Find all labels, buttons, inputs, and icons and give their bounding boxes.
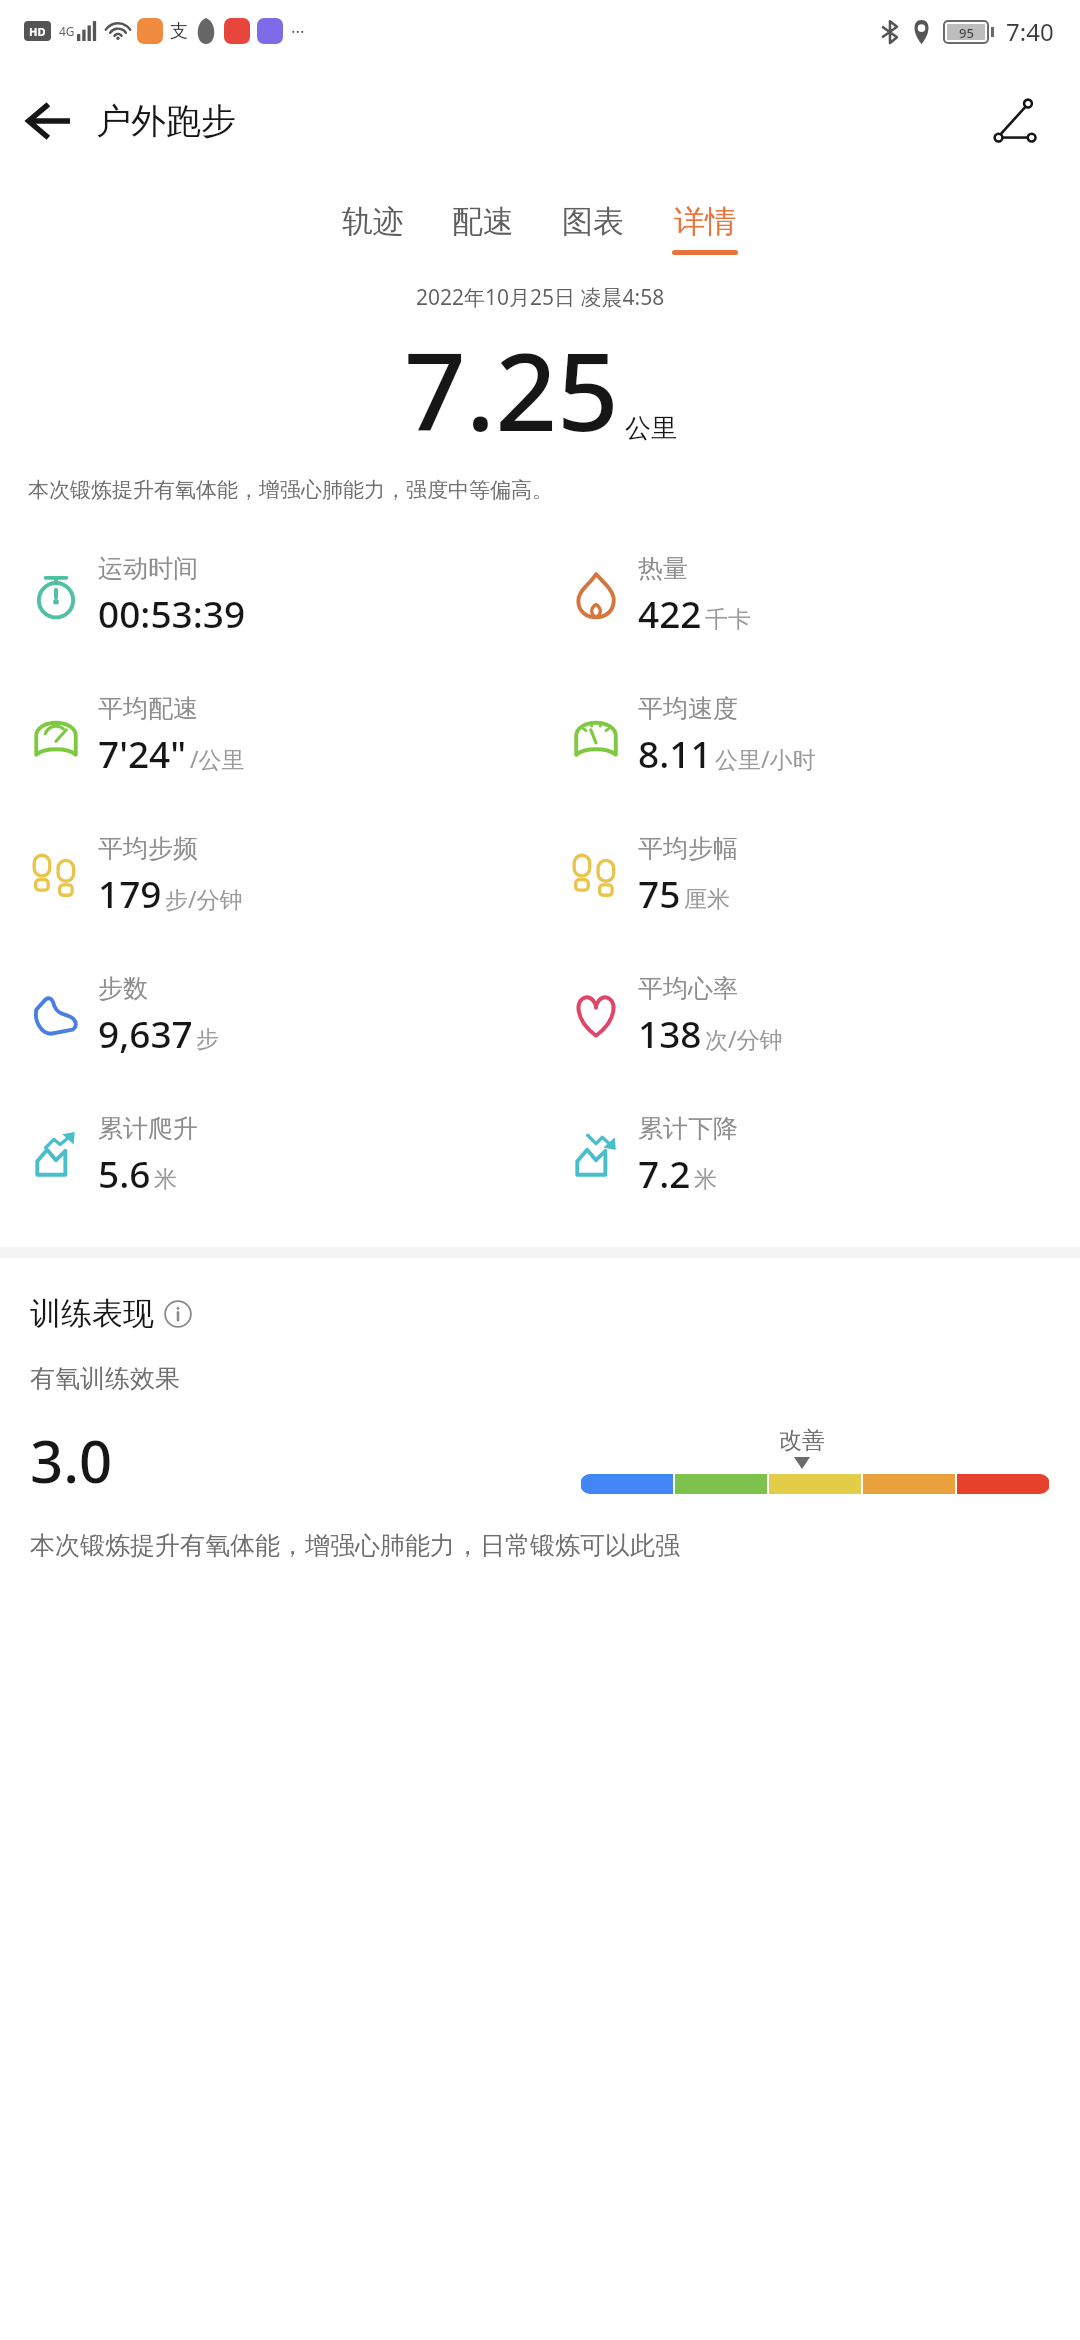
- staticText: 7'24": [98, 728, 187, 778]
- button[interactable]: 分享: [974, 79, 1058, 163]
- staticText: /公里: [190, 743, 245, 774]
- button[interactable]: 详情: [648, 202, 762, 255]
- staticText: 75: [638, 868, 681, 918]
- staticText: 平均速度: [638, 693, 738, 724]
- staticText: 本次锻炼提升有氧体能，增强心肺能力，日常锻炼可以此强: [30, 1530, 680, 1561]
- staticText: 户外跑步: [96, 99, 236, 143]
- staticText: 热量: [638, 553, 688, 584]
- staticText: 累计下降: [638, 1113, 738, 1144]
- staticText: 步: [196, 1025, 219, 1054]
- staticText: 步/分钟: [165, 883, 243, 914]
- other: 说明: [164, 1300, 192, 1328]
- staticText: 公里: [625, 412, 677, 445]
- staticText: 改善: [779, 1426, 825, 1455]
- staticText: 179: [98, 868, 162, 918]
- staticText: HD: [29, 24, 46, 39]
- staticText: 平均步频: [98, 833, 198, 864]
- staticText: 平均配速: [98, 693, 198, 724]
- staticText: 公里/小时: [715, 743, 816, 774]
- button[interactable]: 图表: [538, 202, 648, 255]
- staticText: 配速: [452, 202, 514, 241]
- button[interactable]: 累计爬升: [0, 1085, 540, 1225]
- staticText: 累计爬升: [98, 1113, 198, 1144]
- staticText: 次/分钟: [705, 1023, 783, 1054]
- staticText: 7:40: [1006, 15, 1054, 48]
- staticText: 运动时间: [98, 553, 198, 584]
- staticText: 图表: [562, 202, 624, 241]
- staticText: 支: [170, 20, 188, 43]
- staticText: 3.0: [30, 1421, 113, 1500]
- button[interactable]: 热量: [540, 525, 1080, 665]
- staticText: 7.2: [638, 1148, 691, 1198]
- staticText: 138: [638, 1008, 702, 1058]
- staticText: 95: [959, 24, 974, 40]
- button[interactable]: 平均配速: [0, 665, 540, 805]
- button[interactable]: 步数: [0, 945, 540, 1085]
- button[interactable]: 平均心率: [540, 945, 1080, 1085]
- staticText: 8.11: [638, 728, 712, 778]
- staticText: 厘米: [684, 885, 730, 914]
- staticText: 422: [638, 588, 702, 638]
- button[interactable]: 平均步幅: [540, 805, 1080, 945]
- button[interactable]: 配速: [428, 202, 538, 255]
- staticText: 训练表现: [30, 1294, 154, 1333]
- button[interactable]: 累计下降: [540, 1085, 1080, 1225]
- button[interactable]: 平均速度: [540, 665, 1080, 805]
- staticText: 轨迹: [342, 202, 404, 241]
- staticText: 平均步幅: [638, 833, 738, 864]
- staticText: 米: [154, 1165, 177, 1194]
- staticText: 千卡: [705, 605, 751, 634]
- button[interactable]: 返回: [0, 73, 96, 169]
- button[interactable]: 运动时间: [0, 525, 540, 665]
- staticText: 9,637: [98, 1008, 193, 1058]
- staticText: 详情: [674, 202, 736, 241]
- staticText: 本次锻炼提升有氧体能，增强心肺能力，强度中等偏高。: [28, 477, 553, 503]
- staticText: 7.25: [404, 316, 619, 463]
- staticText: 2022年10月25日 凌晨4:58: [416, 283, 665, 312]
- staticText: 4G: [59, 23, 75, 39]
- staticText: 米: [694, 1165, 717, 1194]
- staticText: ···: [291, 20, 305, 43]
- button[interactable]: 轨迹: [318, 202, 428, 255]
- staticText: 5.6: [98, 1148, 151, 1198]
- staticText: 步数: [98, 973, 148, 1004]
- button[interactable]: 平均步频: [0, 805, 540, 945]
- staticText: 平均心率: [638, 973, 738, 1004]
- button[interactable]: 训练表现: [30, 1294, 192, 1333]
- staticText: 有氧训练效果: [30, 1363, 180, 1394]
- staticText: 00:53:39: [98, 588, 246, 638]
